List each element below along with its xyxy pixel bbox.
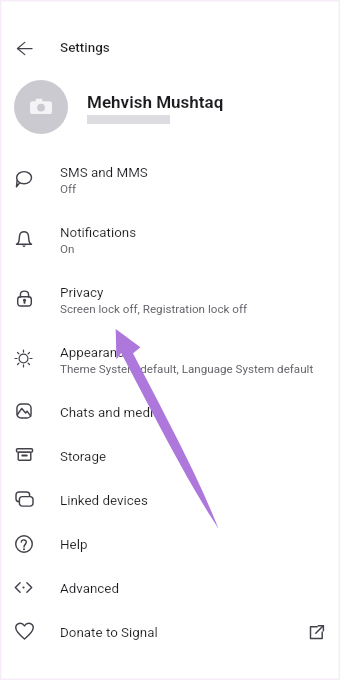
button[interactable] — [0, 151, 340, 211]
staticText: SMS and MMS — [60, 165, 148, 181]
button[interactable] — [0, 80, 340, 134]
button[interactable] — [0, 434, 340, 478]
staticText: Notifications — [60, 225, 137, 241]
button[interactable] — [0, 211, 340, 271]
button[interactable] — [0, 271, 340, 331]
staticText: Linked devices — [60, 493, 148, 509]
staticText: Appearance — [60, 345, 132, 361]
staticText: Storage — [60, 449, 107, 465]
button[interactable] — [0, 566, 340, 610]
button[interactable] — [0, 331, 340, 391]
staticText: Mehvish Mushtaq — [87, 92, 224, 112]
button[interactable] — [0, 522, 340, 566]
button[interactable]: Navigate back — [11, 35, 37, 61]
staticText: On — [60, 242, 75, 256]
staticText: Settings — [60, 40, 110, 56]
staticText: Advanced — [60, 581, 120, 597]
staticText: Privacy — [60, 285, 104, 301]
button[interactable] — [0, 390, 340, 434]
button[interactable] — [0, 478, 340, 522]
staticText: Donate to Signal — [60, 625, 158, 641]
button[interactable] — [0, 610, 340, 654]
button[interactable]: Open donation page — [300, 616, 332, 648]
staticText: Screen lock off, Registration lock off — [60, 302, 248, 316]
staticText: Off — [60, 182, 77, 196]
staticText: Chats and media — [60, 405, 161, 421]
staticText: Theme System default, Language System de… — [60, 362, 314, 376]
staticText: Help — [60, 537, 88, 553]
